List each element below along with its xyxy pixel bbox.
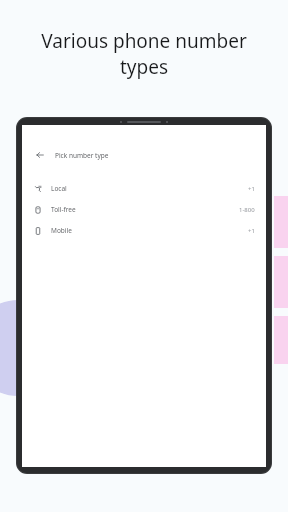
button[interactable]: Back: [22, 144, 266, 166]
staticText: Toll-free: [51, 205, 76, 214]
staticText: Pick number type: [55, 151, 109, 160]
button[interactable]: Toll-free: [22, 199, 266, 220]
staticText: Mobile: [51, 226, 72, 235]
staticText: +1: [248, 185, 255, 193]
button[interactable]: Back: [33, 148, 47, 162]
button[interactable]: Local: [22, 178, 266, 199]
staticText: 1-800: [239, 206, 255, 214]
staticText: Local: [51, 184, 67, 193]
staticText: +1: [248, 227, 255, 235]
button[interactable]: Mobile: [22, 220, 266, 241]
staticText: Various phone number types: [22, 28, 266, 79]
